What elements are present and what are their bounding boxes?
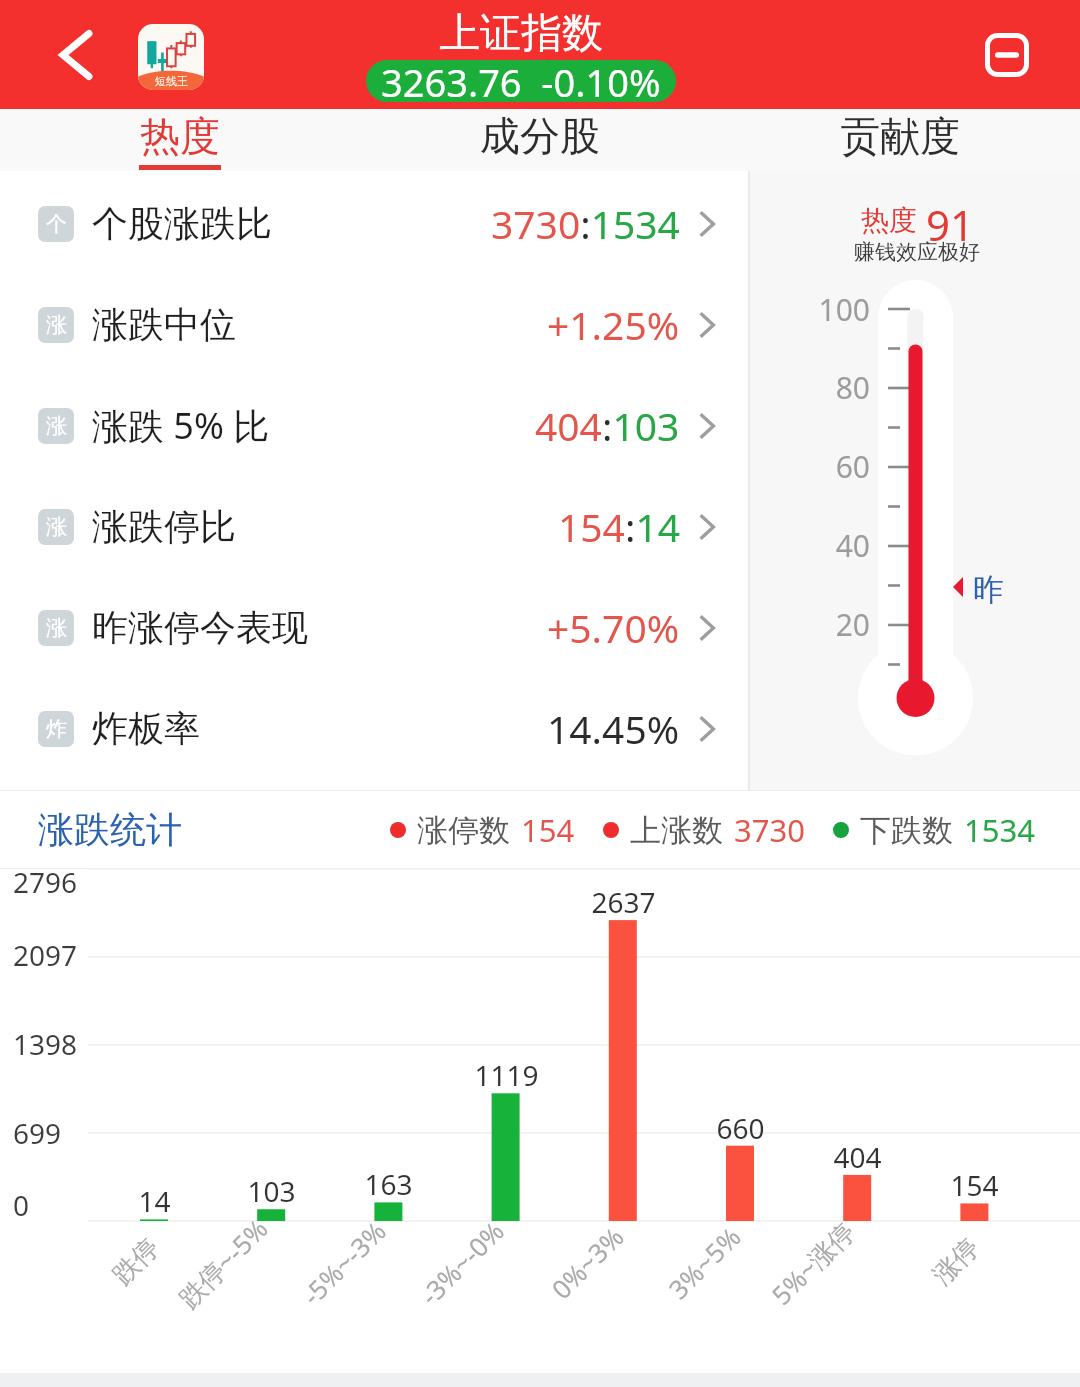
button[interactable]: Minimize	[967, 15, 1047, 95]
button[interactable]: 贡献度	[720, 109, 1080, 171]
staticText: 5%~涨停	[763, 1213, 862, 1312]
staticText: 昨涨停今表现	[92, 605, 308, 650]
staticText: 3%~5%	[660, 1219, 747, 1306]
staticText: 下跌数	[860, 811, 953, 850]
staticText: 154	[521, 809, 575, 851]
button[interactable]: 涨	[0, 577, 748, 678]
staticText: 154	[950, 1166, 999, 1204]
staticText: 699	[13, 1114, 62, 1152]
staticText: 跌停	[106, 1231, 166, 1291]
staticText: 3730	[734, 809, 805, 851]
staticText: 660	[716, 1109, 765, 1147]
staticText: 2097	[13, 936, 78, 974]
staticText: 2637	[591, 883, 656, 921]
staticText: 涨	[46, 413, 67, 439]
staticText: 0%~3%	[543, 1219, 630, 1306]
staticText: 80	[835, 367, 870, 408]
staticText: 20	[835, 604, 870, 645]
button[interactable]: 下跌数	[833, 809, 1035, 851]
staticText: 涨	[46, 312, 67, 338]
staticText: 涨	[46, 514, 67, 540]
button[interactable]: 上涨数	[603, 809, 805, 851]
staticText: 2796	[13, 863, 78, 901]
staticText: 154:14	[558, 500, 680, 553]
staticText: 14.45%	[547, 702, 680, 755]
button[interactable]: 个	[0, 173, 748, 274]
button[interactable]: 成分股	[360, 109, 720, 171]
button[interactable]: 炸	[0, 678, 748, 779]
staticText: 热度	[861, 203, 917, 238]
staticText: 涨停	[926, 1231, 986, 1291]
staticText: 0	[13, 1186, 30, 1224]
staticText: 涨	[46, 615, 67, 641]
staticText: 1119	[474, 1056, 539, 1094]
staticText: 炸	[46, 716, 67, 742]
staticText: 涨跌停比	[92, 504, 236, 549]
button[interactable]: 涨	[0, 375, 748, 476]
staticText: 1534	[964, 809, 1035, 851]
staticText: 涨停数	[417, 811, 510, 850]
staticText: 涨跌统计	[38, 807, 182, 852]
staticText: 40	[835, 525, 870, 566]
staticText: 个股涨跌比	[92, 201, 272, 246]
staticText: 100	[818, 289, 870, 330]
staticText: 个	[46, 211, 67, 237]
staticText: 91	[926, 196, 975, 253]
staticText: 赚钱效应极好	[854, 239, 980, 265]
staticText: 上证指数	[439, 8, 603, 60]
staticText: 成分股	[480, 111, 600, 161]
staticText: 短线王	[155, 74, 188, 88]
staticText: 14	[138, 1182, 171, 1220]
staticText: +5.70%	[547, 601, 680, 654]
staticText: 60	[835, 446, 870, 487]
staticText: 404:103	[535, 399, 680, 452]
staticText: +1.25%	[547, 298, 680, 351]
staticText: 3730:1534	[491, 197, 680, 250]
staticText: 404	[833, 1138, 882, 1176]
button[interactable]: 热度	[0, 109, 360, 171]
staticText: 涨跌 5% 比	[92, 401, 270, 450]
staticText: 跌停~-5%	[171, 1211, 275, 1315]
staticText: 163	[364, 1165, 413, 1203]
button[interactable]: 涨	[0, 274, 748, 375]
staticText: -3%~-0%	[412, 1213, 511, 1312]
button[interactable]: App logo	[138, 24, 204, 90]
staticText: 涨跌中位	[92, 302, 236, 347]
staticText: 上涨数	[630, 811, 723, 850]
staticText: 103	[247, 1172, 296, 1210]
staticText: -5%~-3%	[294, 1213, 393, 1312]
button[interactable]: Back	[32, 11, 120, 99]
button[interactable]: 涨	[0, 476, 748, 577]
staticText: 昨	[973, 570, 1004, 609]
staticText: 3263.76 -0.10%	[381, 60, 661, 98]
staticText: 热度	[140, 111, 220, 161]
staticText: 炸板率	[92, 706, 200, 751]
button[interactable]: 涨停数	[390, 809, 575, 851]
staticText: 1398	[13, 1025, 78, 1063]
staticText: 贡献度	[840, 111, 960, 161]
